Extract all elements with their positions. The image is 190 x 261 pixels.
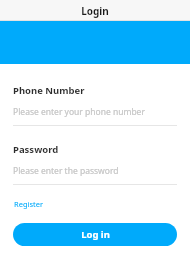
button[interactable]: Phone Number bbox=[13, 84, 177, 126]
button[interactable]: Register bbox=[13, 197, 45, 211]
staticText: Password bbox=[13, 143, 59, 156]
staticText: Please enter your phone number bbox=[13, 106, 145, 118]
button[interactable]: Password bbox=[13, 143, 177, 185]
staticText: Register bbox=[14, 199, 44, 209]
staticText: Log in bbox=[81, 228, 110, 241]
button[interactable]: Log in bbox=[13, 223, 177, 246]
staticText: Phone Number bbox=[13, 84, 85, 97]
staticText: Login bbox=[81, 4, 109, 18]
staticText: Please enter the password bbox=[13, 165, 119, 177]
